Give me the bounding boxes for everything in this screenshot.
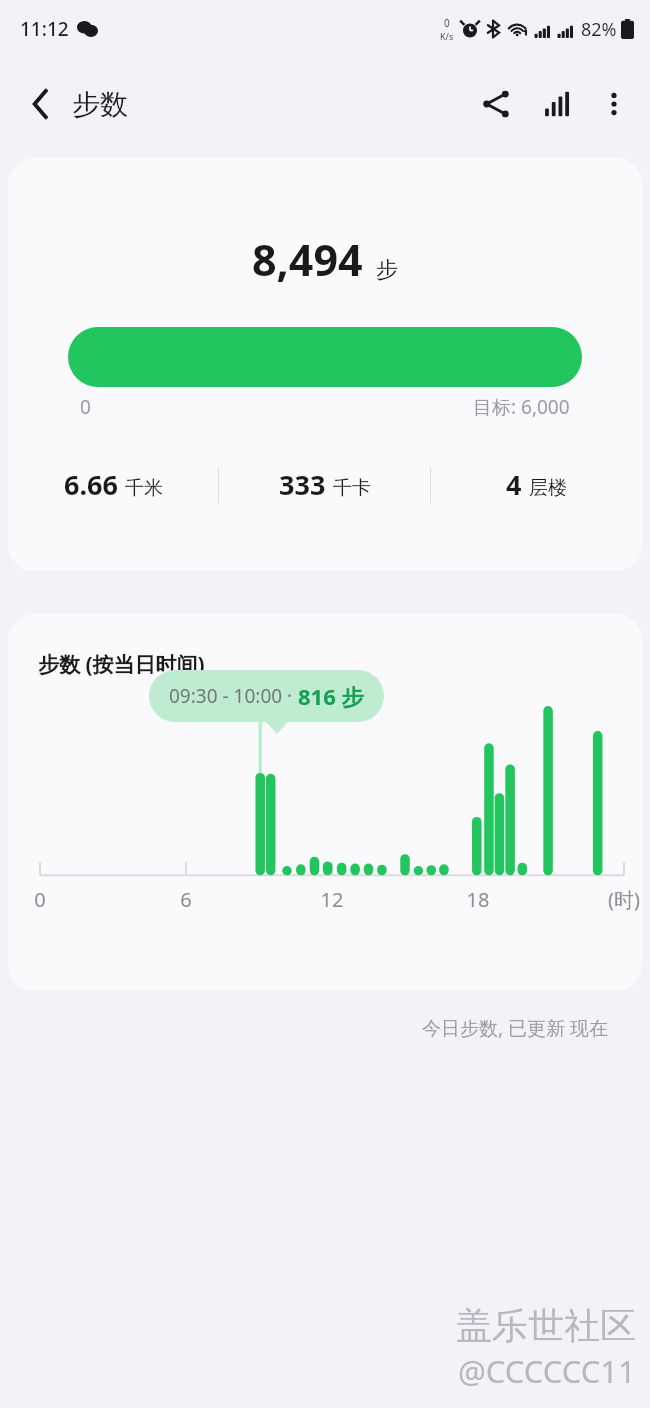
button[interactable]: 4: [431, 466, 642, 503]
staticText: 目标: 6,000: [473, 394, 570, 420]
staticText: 步: [376, 256, 398, 284]
staticText: 0: [12, 886, 68, 913]
button[interactable]: 步数 (按当日时间): [8, 614, 642, 991]
staticText: 步数: [72, 87, 128, 122]
button[interactable]: 333: [219, 466, 430, 503]
staticText: 82%: [581, 17, 617, 42]
button[interactable]: 6.66: [8, 466, 218, 503]
button[interactable]: 09:30 - 10:00 ·: [149, 670, 384, 722]
staticText: 千米: [125, 476, 163, 500]
staticText: @CCCCCC11: [458, 1350, 636, 1392]
staticText: 18: [450, 886, 506, 913]
staticText: 步数 (按当日时间): [38, 650, 205, 679]
staticText: 8,494: [252, 230, 363, 289]
staticText: 12: [304, 886, 360, 913]
staticText: 层楼: [529, 476, 567, 500]
staticText: 4: [506, 466, 522, 503]
staticText: 今日步数, 已更新 现在: [422, 1015, 608, 1041]
button[interactable]: More options: [586, 76, 642, 132]
button[interactable]: Share: [466, 74, 526, 134]
staticText: 6.66: [64, 466, 118, 503]
button[interactable]: 8,494: [8, 158, 642, 571]
staticText: K/s: [440, 30, 454, 42]
staticText: 千卡: [333, 476, 371, 500]
staticText: 333: [279, 466, 326, 503]
staticText: 0: [80, 394, 91, 420]
staticText: 11:12: [20, 16, 69, 42]
staticText: 09:30 - 10:00 ·: [169, 683, 298, 709]
staticText: 6: [158, 886, 214, 913]
staticText: 816 步: [298, 681, 364, 711]
staticText: 盖乐世社区: [456, 1303, 636, 1348]
button[interactable]: Statistics: [526, 74, 586, 134]
button[interactable]: Back: [12, 75, 70, 133]
staticText: 0: [444, 16, 450, 30]
staticText: (时): [596, 886, 642, 913]
